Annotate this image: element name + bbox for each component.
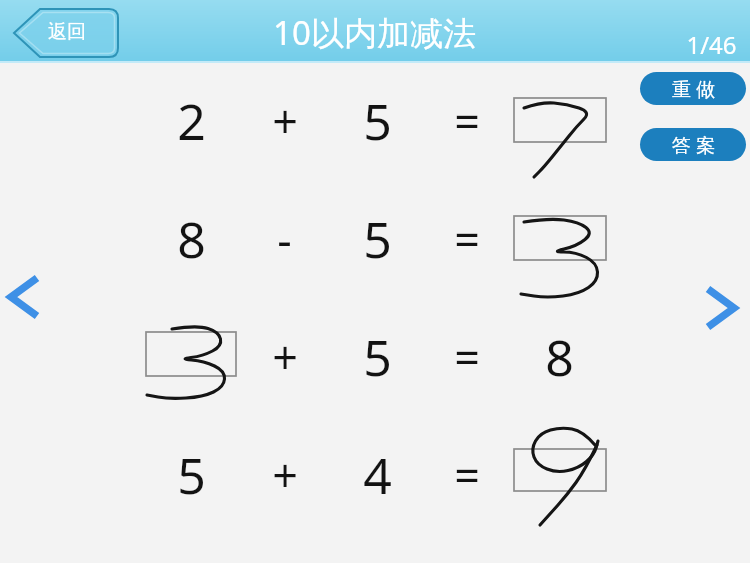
button[interactable]: Next page (694, 279, 750, 339)
staticText: + (272, 90, 298, 151)
staticText: 8 (545, 323, 574, 391)
button[interactable]: Back (12, 8, 120, 58)
staticText: 2 (177, 87, 206, 155)
staticText: 10以内加减法 (273, 10, 476, 55)
staticText: - (277, 208, 292, 269)
staticText: 1/46 (686, 28, 737, 61)
staticText: = (454, 90, 480, 151)
staticText: = (454, 444, 480, 505)
staticText: + (272, 444, 298, 505)
button[interactable]: Previous page (0, 268, 56, 328)
staticText: 5 (177, 441, 206, 509)
staticText: 重 做 (672, 76, 715, 102)
staticText: 8 (177, 205, 206, 273)
staticText: 5 (363, 323, 392, 391)
staticText: + (272, 326, 298, 387)
staticText: 5 (363, 87, 392, 155)
staticText: = (454, 326, 480, 387)
staticText: 4 (363, 441, 392, 509)
staticText: 5 (363, 205, 392, 273)
staticText: 返回 (48, 20, 86, 44)
staticText: 答 案 (672, 132, 715, 158)
button[interactable]: 答 案 (640, 128, 746, 161)
staticText: = (454, 208, 480, 269)
button[interactable]: 重 做 (640, 72, 746, 105)
